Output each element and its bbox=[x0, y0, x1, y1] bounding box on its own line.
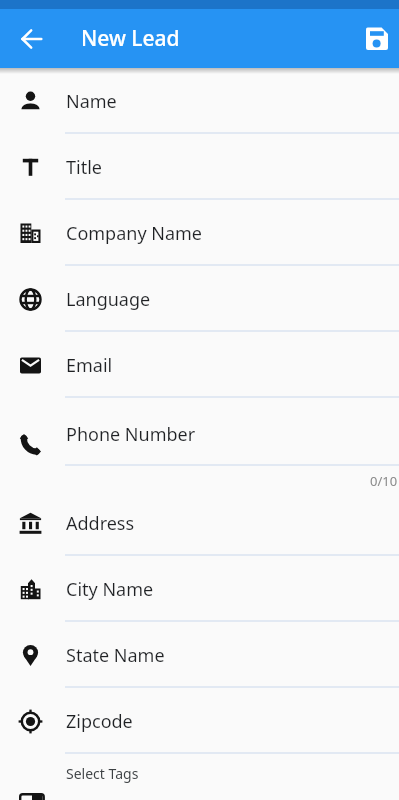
button[interactable]: State Name bbox=[0, 622, 399, 688]
button[interactable]: Language bbox=[0, 266, 399, 332]
staticText: New Lead bbox=[81, 24, 180, 53]
button[interactable]: Email bbox=[0, 332, 399, 398]
button[interactable]: Phone Number bbox=[0, 398, 399, 490]
staticText: Name bbox=[66, 89, 117, 114]
staticText: Company Name bbox=[66, 221, 203, 246]
staticText: City Name bbox=[66, 577, 154, 602]
staticText: Select Tags bbox=[66, 764, 139, 783]
button[interactable]: Name bbox=[0, 68, 399, 134]
button[interactable]: Company Name bbox=[0, 200, 399, 266]
staticText: Title bbox=[66, 155, 102, 180]
staticText: Zipcode bbox=[66, 709, 133, 734]
button[interactable]: Zipcode bbox=[0, 688, 399, 754]
button[interactable]: Title bbox=[0, 134, 399, 200]
staticText: State Name bbox=[66, 643, 165, 668]
button[interactable]: Select Tags bbox=[0, 754, 399, 800]
staticText: Address bbox=[66, 511, 135, 536]
staticText: Phone Number bbox=[66, 422, 196, 447]
staticText: 0/10 bbox=[370, 472, 398, 490]
button[interactable]: City Name bbox=[0, 556, 399, 622]
button[interactable]: Address bbox=[0, 490, 399, 556]
staticText: Language bbox=[66, 287, 151, 312]
button[interactable] bbox=[359, 21, 395, 57]
staticText: Email bbox=[66, 353, 113, 378]
button[interactable] bbox=[8, 15, 56, 63]
